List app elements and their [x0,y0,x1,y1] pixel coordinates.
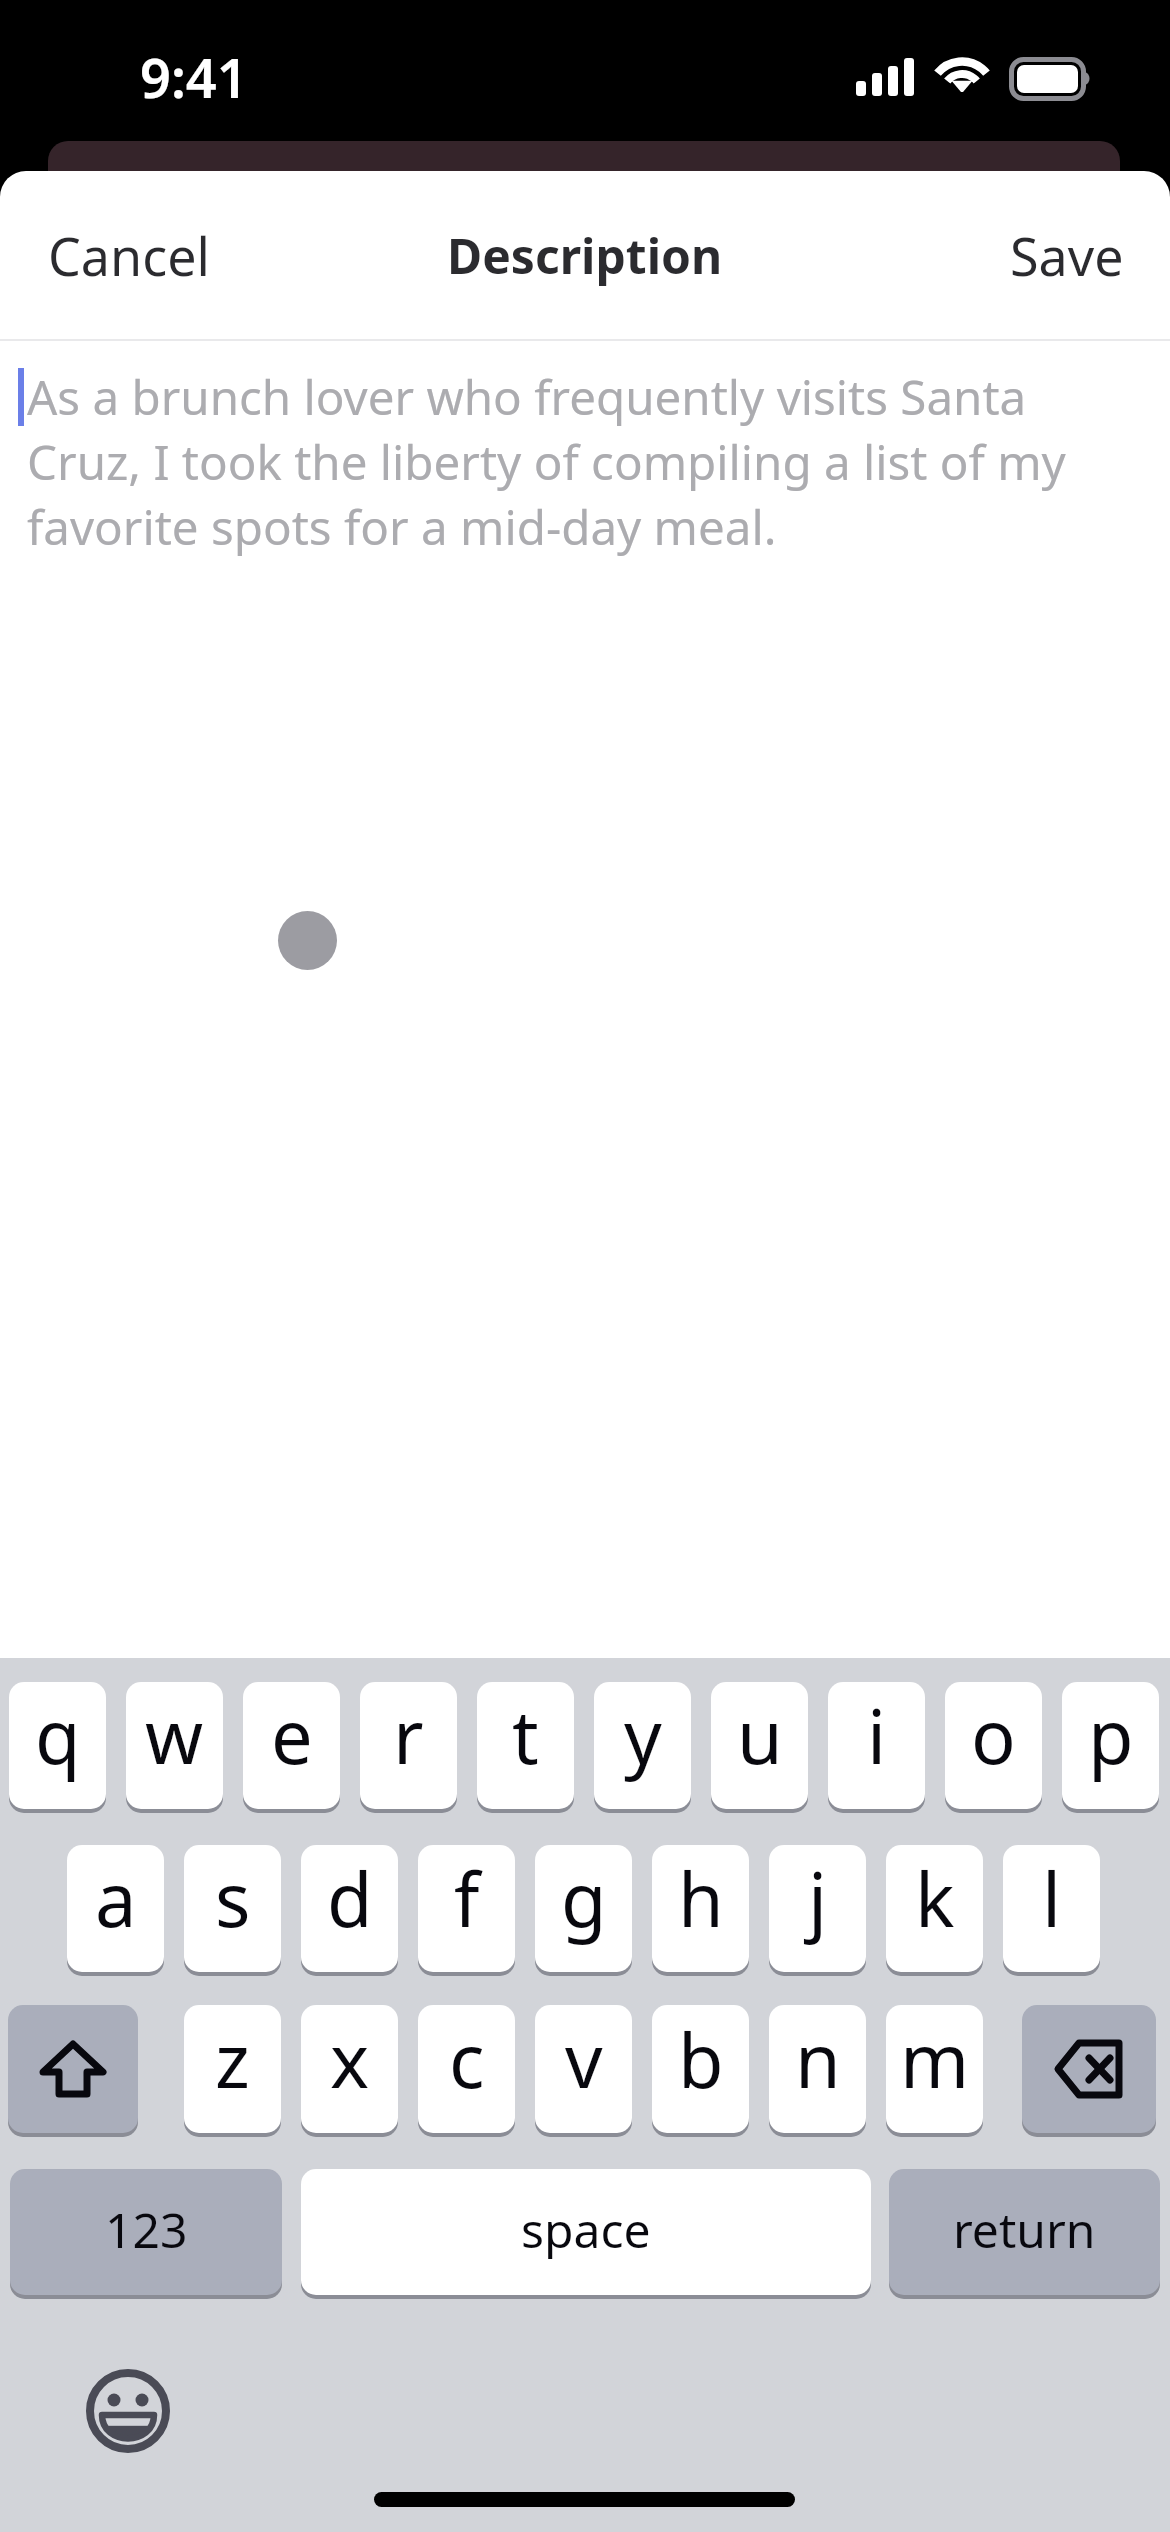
button[interactable]: return [889,2169,1160,2295]
staticText: n [795,2009,841,2110]
button[interactable]: t [477,1682,574,1809]
button[interactable]: Save [974,194,1170,317]
staticText: j [808,1848,828,1949]
staticText: return [953,2197,1096,2262]
button[interactable]: o [945,1682,1042,1809]
staticText: c [449,2009,485,2110]
staticText: a [95,1848,137,1949]
button[interactable]: h [652,1845,749,1972]
staticText: 123 [105,2197,188,2262]
button[interactable]: u [711,1682,808,1809]
staticText: space [521,2197,651,2262]
button[interactable]: q [9,1682,106,1809]
button[interactable]: r [360,1682,457,1809]
button[interactable]: f [418,1845,515,1972]
staticText: t [512,1685,539,1786]
button[interactable]: j [769,1845,866,1972]
staticText: y [624,1685,662,1786]
staticText: o [971,1685,1016,1786]
button[interactable]: Shift [8,2005,138,2133]
button[interactable]: x [301,2005,398,2133]
button[interactable]: space [301,2169,871,2295]
staticText: g [561,1848,607,1949]
staticText: s [215,1848,251,1949]
button[interactable]: a [67,1845,164,1972]
staticText: Cancel [48,220,210,291]
staticText: x [330,2009,370,2110]
staticText: q [35,1685,81,1786]
button[interactable]: Cancel [0,194,246,317]
button[interactable]: i [828,1682,925,1809]
staticText: r [393,1685,424,1786]
staticText: d [327,1848,373,1949]
staticText: v [565,2009,603,2110]
button[interactable]: z [184,2005,281,2133]
staticText: b [678,2009,724,2110]
button[interactable]: w [126,1682,223,1809]
button[interactable]: m [886,2005,983,2133]
staticText: p [1088,1685,1134,1786]
button[interactable]: p [1062,1682,1159,1809]
button[interactable]: c [418,2005,515,2133]
button[interactable]: Emoji keyboard [86,2369,170,2453]
button[interactable]: l [1003,1845,1100,1972]
staticText: Description [447,223,723,288]
staticText: h [678,1848,724,1949]
staticText: w [145,1685,204,1786]
staticText: m [900,2009,970,2110]
staticText: l [1042,1848,1062,1949]
staticText: k [915,1848,955,1949]
button[interactable]: g [535,1845,632,1972]
staticText: f [454,1848,480,1949]
button[interactable]: b [652,2005,749,2133]
staticText: e [271,1685,313,1786]
staticText: 9:41 [140,40,248,114]
button[interactable]: s [184,1845,281,1972]
staticText: u [737,1685,783,1786]
staticText: As a brunch lover who frequently visits … [27,364,1097,559]
staticText: Save [1010,220,1124,291]
button[interactable]: Delete [1022,2005,1156,2133]
staticText: z [215,2009,250,2110]
button[interactable]: 123 [10,2169,282,2295]
button[interactable]: y [594,1682,691,1809]
button[interactable]: d [301,1845,398,1972]
button[interactable]: v [535,2005,632,2133]
staticText: i [867,1685,887,1786]
button[interactable]: n [769,2005,866,2133]
button[interactable]: k [886,1845,983,1972]
button[interactable]: e [243,1682,340,1809]
